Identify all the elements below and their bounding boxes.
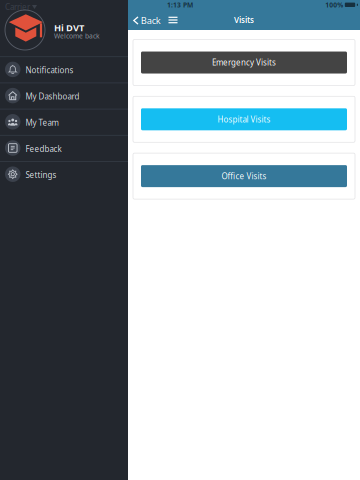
staticText: Hospital Visits [217, 114, 270, 125]
staticText: 100% [325, 0, 343, 9]
staticText: Back [141, 14, 161, 27]
staticText: Visits [234, 15, 254, 25]
staticText: Office Visits [221, 171, 266, 181]
button[interactable]: Hospital Visits [141, 108, 347, 130]
staticText: Settings [25, 170, 56, 180]
button[interactable]: My Dashboard [0, 82, 128, 109]
button[interactable]: Office Visits [141, 165, 347, 187]
staticText: Carrier [5, 2, 30, 12]
button[interactable]: Menu [164, 12, 182, 28]
staticText: My Dashboard [25, 91, 79, 102]
button[interactable]: Back [133, 12, 165, 28]
button[interactable]: My Team [0, 109, 128, 135]
staticText: My Team [25, 117, 58, 128]
staticText: Hi DVT [54, 21, 84, 34]
staticText: Emergency Visits [212, 57, 276, 68]
button[interactable]: Emergency Visits [141, 51, 347, 73]
button[interactable]: Feedback [0, 135, 128, 161]
staticText: Notifications [25, 65, 73, 75]
button[interactable]: Settings [0, 161, 128, 187]
button[interactable]: Notifications [0, 56, 128, 82]
staticText: Welcome back [54, 31, 100, 40]
staticText: 1:13 PM [167, 0, 193, 9]
staticText: Feedback [25, 143, 61, 154]
